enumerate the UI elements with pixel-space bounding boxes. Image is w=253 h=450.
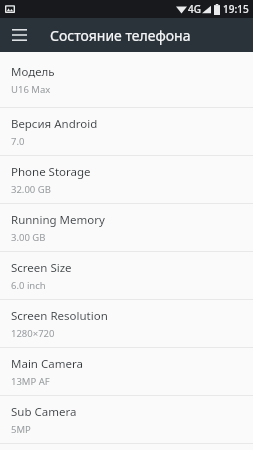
- staticText: 3.00 GB: [11, 231, 46, 244]
- staticText: Running Memory: [11, 212, 105, 228]
- button[interactable]: Версия Android: [0, 108, 253, 155]
- staticText: 32.00 GB: [11, 183, 51, 196]
- button[interactable]: Phone Storage: [0, 156, 253, 203]
- button[interactable]: Running Memory: [0, 204, 253, 251]
- staticText: 5MP: [11, 423, 31, 436]
- staticText: 13MP AF: [11, 375, 50, 388]
- staticText: Screen Resolution: [11, 308, 108, 324]
- staticText: 1280×720: [11, 327, 55, 340]
- button[interactable]: Модель: [0, 52, 253, 107]
- staticText: Состояние телефона: [50, 26, 191, 45]
- staticText: 7.0: [11, 135, 25, 148]
- button[interactable]: Screen Size: [0, 252, 253, 299]
- staticText: Main Camera: [11, 356, 83, 372]
- staticText: 19:15: [223, 2, 249, 16]
- button[interactable]: Main Camera: [0, 348, 253, 395]
- staticText: Phone Storage: [11, 164, 91, 180]
- button[interactable]: Sub Camera: [0, 396, 253, 443]
- button[interactable]: Open navigation menu: [6, 22, 32, 48]
- button[interactable]: Screen Resolution: [0, 300, 253, 347]
- staticText: U16 Max: [11, 83, 51, 96]
- staticText: Модель: [11, 64, 55, 80]
- staticText: 4G: [188, 2, 201, 16]
- staticText: Screen Size: [11, 260, 72, 276]
- staticText: Версия Android: [11, 116, 98, 132]
- staticText: Sub Camera: [11, 404, 77, 420]
- staticText: 6.0 inch: [11, 279, 46, 292]
